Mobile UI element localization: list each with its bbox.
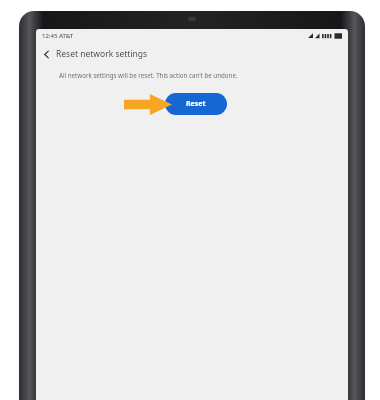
button[interactable]: Reset [165, 93, 227, 115]
staticText: All network settings will be reset. This… [59, 71, 238, 79]
button[interactable]: Back [36, 44, 56, 64]
staticText: Reset network settings [56, 48, 148, 60]
staticText: 12:45 AT&T [42, 32, 74, 40]
staticText: Reset [186, 99, 206, 109]
